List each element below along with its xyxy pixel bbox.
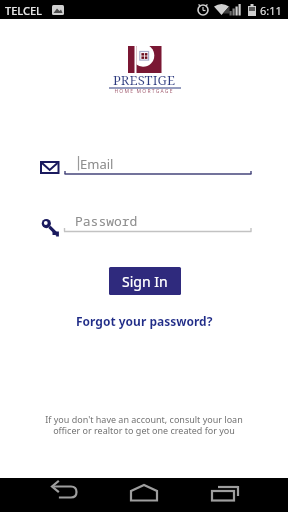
staticText: TELCEL [5,3,42,18]
staticText: Forgot your password? [76,313,213,329]
staticText: 6:11 [260,3,282,18]
staticText: Email [80,155,114,173]
button[interactable] [0,478,96,512]
staticText: PRESTIGE [0,71,288,89]
staticText: HOME MORTGAGE [0,88,288,95]
button[interactable]: Email [64,152,252,176]
button[interactable]: Password [64,210,252,234]
staticText: Sign In [122,272,168,291]
button[interactable]: Forgot your password? [0,313,288,329]
button[interactable]: Sign In [109,267,181,295]
button[interactable] [192,478,288,512]
staticText: If you don't have an account, consult yo… [0,413,288,436]
button[interactable] [96,478,192,512]
staticText: Password [75,212,138,230]
